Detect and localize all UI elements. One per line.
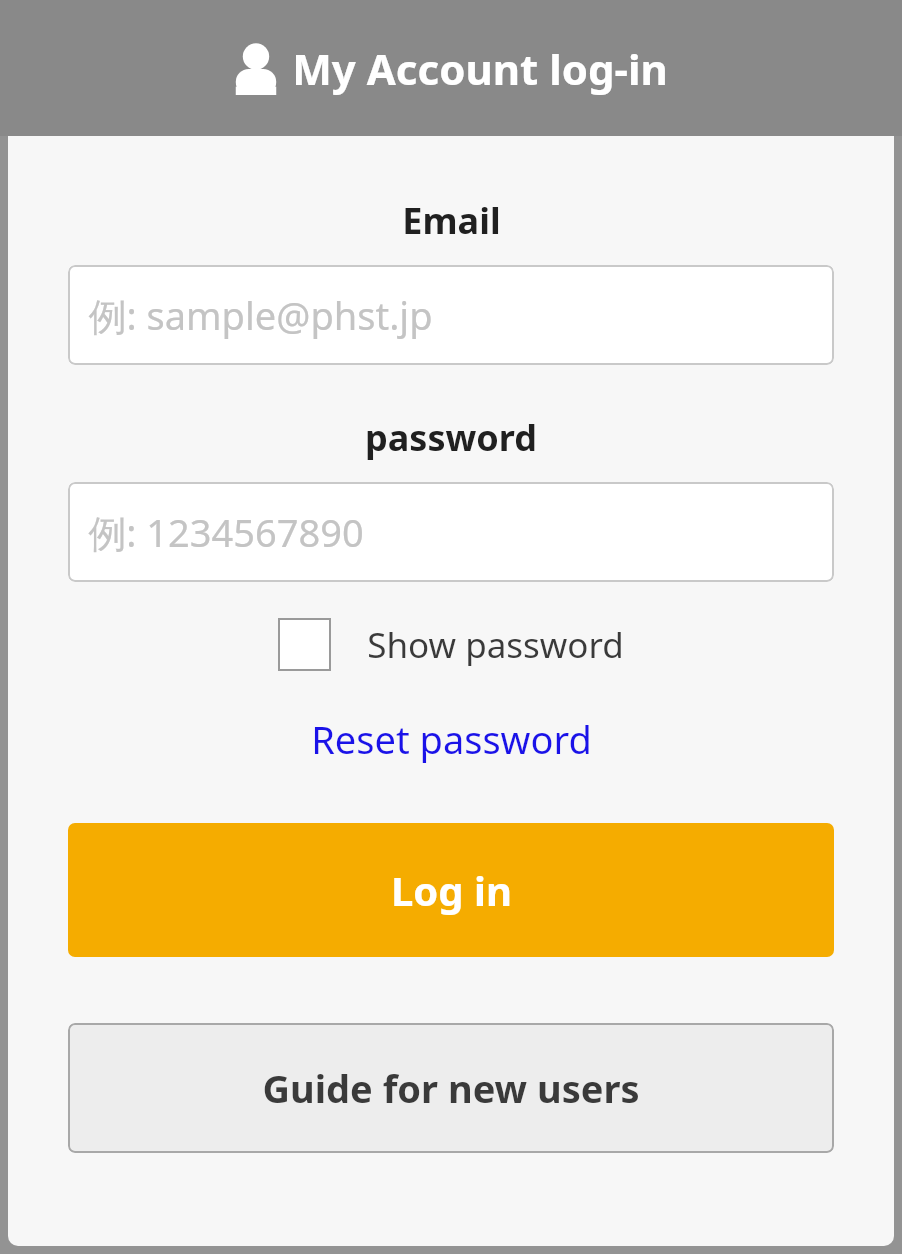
staticText: 例: sample@phst.jp: [88, 289, 433, 341]
staticText: Log in: [391, 863, 512, 917]
button[interactable]: Show password: [272, 612, 630, 677]
staticText: My Account log-in: [292, 40, 668, 97]
button[interactable]: 例: 1234567890: [68, 482, 834, 582]
staticText: 例: 1234567890: [88, 506, 364, 558]
other: Account: [234, 43, 278, 95]
button[interactable]: Guide for new users: [68, 1023, 834, 1153]
staticText: Show password: [367, 621, 624, 669]
button[interactable]: 例: sample@phst.jp: [68, 265, 834, 365]
staticText: password: [365, 413, 537, 462]
button[interactable]: Reset password: [303, 709, 600, 769]
staticText: Guide for new users: [262, 1062, 640, 1114]
staticText: Reset password: [311, 713, 592, 765]
staticText: Email: [402, 196, 501, 245]
button[interactable]: Log in: [68, 823, 834, 957]
